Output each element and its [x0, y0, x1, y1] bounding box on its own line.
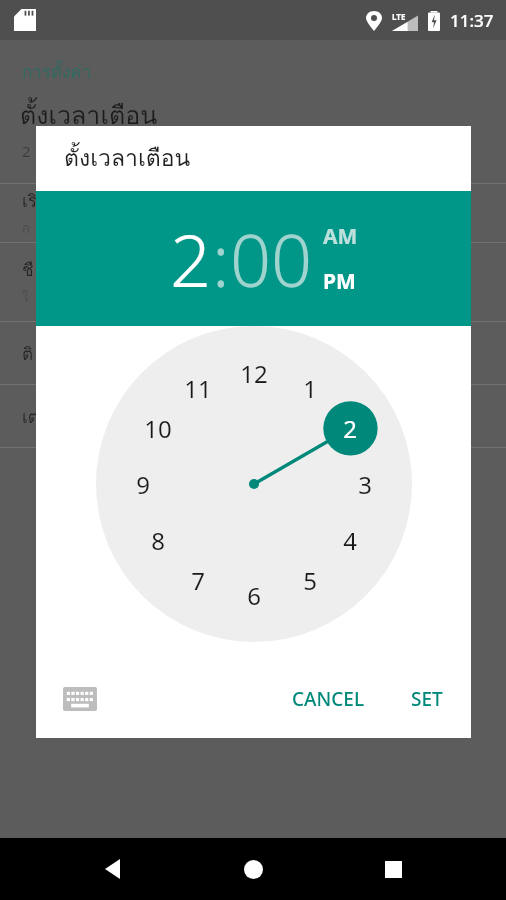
- staticText: เริ: [22, 187, 37, 214]
- staticText: ตั้งเวลาเตือน: [20, 95, 158, 135]
- button[interactable]: 5: [285, 555, 335, 605]
- staticText: ใ: [22, 287, 29, 308]
- button[interactable]: Back: [86, 842, 140, 896]
- staticText: 3: [358, 468, 372, 501]
- button[interactable]: 6: [229, 570, 279, 620]
- staticText: 1: [303, 372, 317, 405]
- button[interactable]: Switch to keyboard input: [58, 677, 102, 721]
- staticText: เต: [22, 403, 39, 430]
- staticText: 5: [303, 564, 317, 597]
- staticText: ตั้งเวลาเตือน: [64, 140, 191, 177]
- button[interactable]: 11: [173, 363, 223, 413]
- staticText: 4: [343, 524, 357, 557]
- button[interactable]: 12: [229, 348, 279, 398]
- staticText: 7: [191, 564, 205, 597]
- staticText: AM: [323, 222, 358, 251]
- staticText: 11:37: [450, 9, 494, 32]
- staticText: 9: [136, 468, 150, 501]
- button[interactable]: 4: [325, 515, 375, 565]
- staticText: 2: [170, 210, 212, 308]
- staticText: 2: [343, 412, 357, 445]
- button[interactable]: 2: [325, 403, 375, 453]
- button[interactable]: 8: [133, 515, 183, 565]
- button[interactable]: 00: [230, 210, 313, 308]
- staticText: 12: [240, 357, 268, 390]
- staticText: SET: [411, 686, 443, 712]
- button[interactable]: PM: [323, 264, 356, 299]
- button[interactable]: SET: [397, 676, 457, 722]
- staticText: 2: [22, 141, 31, 161]
- staticText: CANCEL: [292, 686, 365, 712]
- staticText: ชื: [22, 256, 34, 283]
- staticText: 11: [184, 372, 212, 405]
- staticText: 00: [230, 210, 313, 308]
- button[interactable]: Recent apps: [366, 842, 420, 896]
- button[interactable]: CANCEL: [278, 676, 379, 722]
- button[interactable]: Home: [226, 842, 280, 896]
- staticText: 10: [144, 412, 172, 445]
- staticText: การตั้งค่า: [22, 58, 92, 85]
- button[interactable]: 9: [118, 459, 168, 509]
- staticText: ติ: [22, 340, 34, 367]
- button[interactable]: 10: [133, 403, 183, 453]
- staticText: 8: [151, 524, 165, 557]
- staticText: LTE: [392, 11, 406, 22]
- button[interactable]: 3: [340, 459, 390, 509]
- staticText: ก: [22, 218, 30, 239]
- staticText: PM: [323, 267, 356, 296]
- staticText: :: [212, 210, 230, 308]
- button[interactable]: 1: [285, 363, 335, 413]
- button[interactable]: AM: [323, 219, 358, 254]
- button[interactable]: 7: [173, 555, 223, 605]
- button[interactable]: 2: [170, 210, 212, 308]
- staticText: 6: [247, 579, 261, 612]
